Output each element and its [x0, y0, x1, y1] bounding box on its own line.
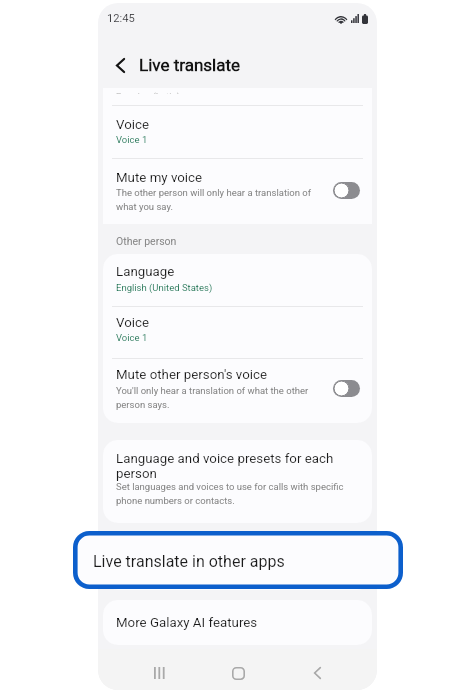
- staticText: The other person will only hear a transl…: [116, 187, 326, 213]
- button[interactable]: Recent apps: [142, 656, 176, 690]
- staticText: 12:45: [107, 12, 135, 25]
- staticText: Voice 1: [116, 134, 148, 145]
- button[interactable]: Home: [221, 656, 255, 690]
- button[interactable]: [103, 88, 372, 224]
- button[interactable]: [103, 440, 372, 523]
- button[interactable]: Toggle switch, off: [333, 182, 360, 199]
- button[interactable]: [103, 532, 372, 590]
- button[interactable]: [103, 600, 372, 645]
- button[interactable]: [103, 254, 372, 423]
- staticText: English (United States): [116, 282, 213, 293]
- staticText: Language: [116, 264, 175, 280]
- staticText: Set languages and voices to use for call…: [116, 481, 356, 506]
- staticText: Live translate in other apps: [116, 555, 276, 571]
- button[interactable]: Back: [106, 51, 135, 80]
- staticText: Mute my voice: [116, 170, 203, 186]
- button[interactable]: Back: [300, 656, 334, 690]
- staticText: Voice: [116, 315, 149, 331]
- staticText: Language and voice presets for each pers…: [116, 451, 344, 481]
- staticText: Bosnian (Latin): [116, 91, 181, 94]
- button[interactable]: Toggle switch, off: [333, 380, 360, 397]
- staticText: Voice: [116, 117, 149, 133]
- staticText: Live translate: [139, 55, 241, 75]
- staticText: Mute other person's voice: [116, 367, 268, 383]
- staticText: More Galaxy AI features: [116, 615, 258, 631]
- staticText: You'll only hear a translation of what t…: [116, 385, 326, 411]
- button[interactable]: Live translate in other apps: [73, 531, 403, 589]
- staticText: Other person: [116, 235, 177, 247]
- staticText: Voice 1: [116, 332, 148, 343]
- staticText: Live translate in other apps: [93, 552, 285, 571]
